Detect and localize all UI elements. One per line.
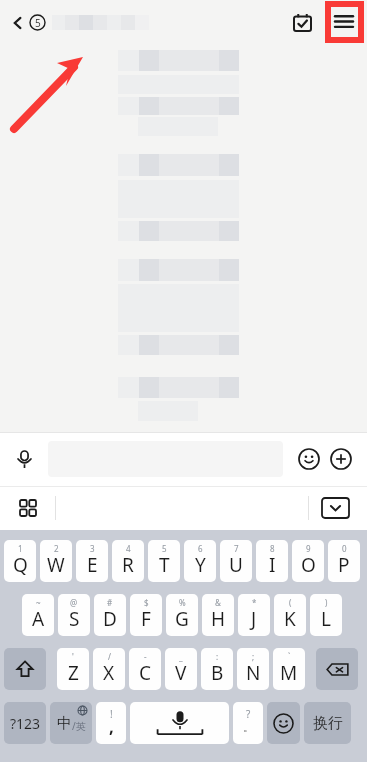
staticText: _ <box>179 651 183 662</box>
staticText: O <box>301 552 316 578</box>
staticText: E <box>87 552 98 578</box>
button[interactable]: Hide keyboard <box>322 498 349 518</box>
button[interactable]: key <box>316 648 358 690</box>
button[interactable]: L <box>310 594 342 636</box>
staticText: R <box>122 552 134 578</box>
staticText: Q <box>13 552 28 578</box>
staticText: , <box>109 715 114 738</box>
button[interactable]: Tasks <box>289 9 315 35</box>
staticText: V <box>175 660 187 686</box>
staticText: 中 <box>57 714 72 733</box>
staticText: L <box>321 606 331 632</box>
button[interactable]: Y <box>184 540 216 582</box>
button[interactable]: C <box>129 648 161 690</box>
staticText: Z <box>68 660 79 686</box>
staticText: : <box>216 651 219 662</box>
staticText: 4 <box>126 543 131 554</box>
button[interactable]: S <box>58 594 90 636</box>
staticText: ~ <box>36 597 41 608</box>
button[interactable]: T <box>148 540 180 582</box>
staticText: I <box>269 552 276 578</box>
button[interactable]: R <box>112 540 144 582</box>
button[interactable]: key <box>233 702 263 744</box>
staticText: ! <box>110 707 113 721</box>
staticText: 5 <box>162 543 167 554</box>
staticText: 2 <box>54 543 59 554</box>
staticText: 0 <box>342 543 347 554</box>
staticText: /英 <box>72 719 86 733</box>
staticText: @ <box>70 597 78 608</box>
button[interactable]: W <box>40 540 72 582</box>
button[interactable]: Z <box>57 648 89 690</box>
staticText: 6 <box>198 543 203 554</box>
button[interactable]: key <box>267 702 300 744</box>
staticText: G <box>175 606 189 632</box>
button[interactable]: key <box>4 648 46 690</box>
button[interactable]: G <box>166 594 198 636</box>
button[interactable]: key <box>96 702 126 744</box>
button[interactable]: P <box>328 540 360 582</box>
staticText: - <box>144 651 147 662</box>
staticText: W <box>47 552 65 578</box>
button[interactable]: Q <box>4 540 36 582</box>
button[interactable]: Emoji <box>295 445 323 473</box>
button[interactable]: Voice input <box>12 447 36 471</box>
staticText: 9 <box>306 543 311 554</box>
staticText: ?123 <box>10 714 41 733</box>
staticText: K <box>284 606 296 632</box>
button[interactable]: O <box>292 540 324 582</box>
staticText: / <box>108 651 111 662</box>
button[interactable]: M <box>273 648 305 690</box>
staticText: & <box>215 597 221 608</box>
button[interactable]: N <box>237 648 269 690</box>
staticText: J <box>251 606 257 632</box>
button[interactable]: H <box>202 594 234 636</box>
button[interactable]: B <box>201 648 233 690</box>
staticText: M <box>280 660 298 686</box>
staticText: ) <box>325 597 328 608</box>
button[interactable]: key <box>130 702 229 744</box>
staticText: 3 <box>90 543 95 554</box>
staticText: B <box>211 660 224 686</box>
staticText: $ <box>144 597 149 608</box>
staticText: X <box>103 660 115 686</box>
button[interactable]: ?123 <box>4 702 46 744</box>
button[interactable]: I <box>256 540 288 582</box>
button[interactable]: 换行 <box>304 702 351 744</box>
staticText: ' <box>72 651 74 662</box>
staticText: T <box>159 552 170 578</box>
staticText: 8 <box>270 543 275 554</box>
button[interactable]: Menu <box>331 9 357 35</box>
button[interactable]: A <box>22 594 54 636</box>
button[interactable]: J <box>238 594 270 636</box>
staticText: 。 <box>243 720 254 734</box>
staticText: A <box>32 606 45 632</box>
staticText: Y <box>195 552 206 578</box>
button[interactable]: E <box>76 540 108 582</box>
staticText: * <box>252 597 257 608</box>
button[interactable]: Keyboard apps <box>14 494 42 522</box>
staticText: # <box>107 597 113 608</box>
staticText: 7 <box>234 543 239 554</box>
staticText: ` <box>288 651 291 662</box>
button[interactable]: Back <box>10 14 46 31</box>
staticText: ( <box>289 597 292 608</box>
button[interactable]: More <box>327 445 355 473</box>
button[interactable]: F <box>130 594 162 636</box>
button[interactable]: X <box>93 648 125 690</box>
staticText: C <box>139 660 152 686</box>
staticText: S <box>69 606 80 632</box>
button[interactable]: U <box>220 540 252 582</box>
button[interactable]: K <box>274 594 306 636</box>
staticText: ? <box>246 707 251 721</box>
button[interactable]: D <box>94 594 126 636</box>
staticText: D <box>103 606 117 632</box>
staticText: U <box>229 552 243 578</box>
staticText: H <box>211 606 226 632</box>
button[interactable]: key <box>50 702 92 744</box>
button[interactable]: V <box>165 648 197 690</box>
staticText: 换行 <box>313 714 343 733</box>
staticText: 5 <box>35 16 41 30</box>
staticText: F <box>141 606 151 632</box>
